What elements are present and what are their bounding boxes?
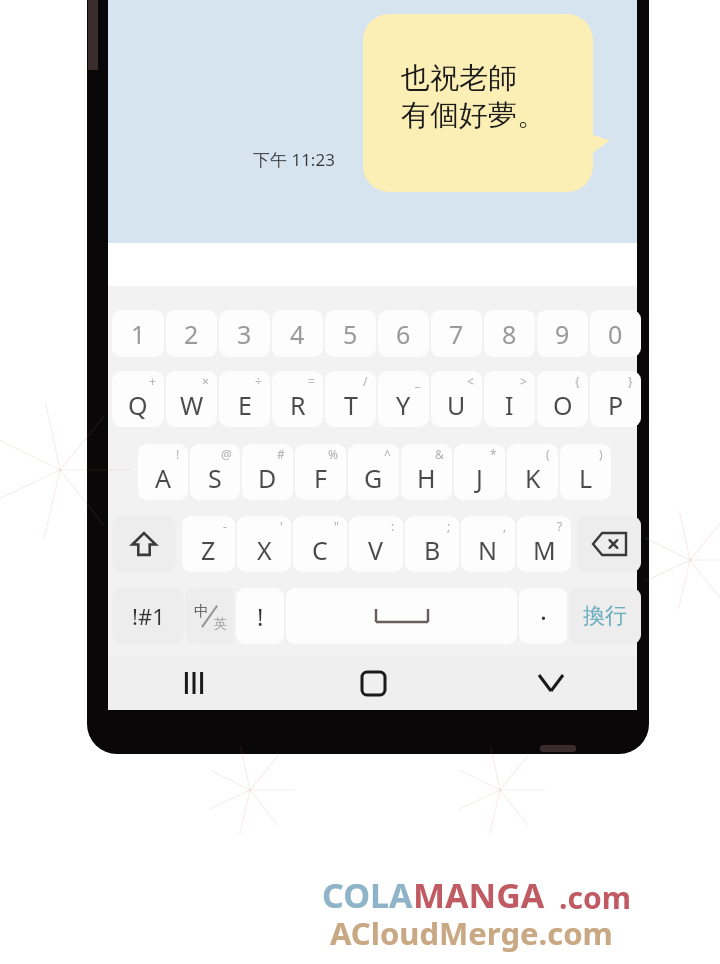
staticText: C [312,533,328,567]
staticText: !#1 [132,601,165,631]
button[interactable]: { [537,371,588,427]
button[interactable]: !#1 [112,588,184,644]
staticText: 9 [555,317,570,351]
staticText: / [363,373,368,389]
button[interactable]: 換行 [569,588,641,644]
button[interactable]: ! [236,588,284,644]
button[interactable]: ( [507,444,558,500]
button[interactable]: Hide keyboard [527,659,575,707]
staticText: 換行 [583,602,627,630]
staticText: ÷ [255,373,262,389]
staticText: 有個好夢。 [401,97,546,134]
button[interactable]: 8 [484,310,535,357]
button[interactable]: × [166,371,217,427]
staticText: * [490,446,497,462]
staticText: G [364,461,383,495]
button[interactable]: ! [138,444,188,500]
staticText: } [628,373,633,389]
button[interactable]: @ [190,444,240,500]
button[interactable]: _ [378,371,429,427]
staticText: 2 [184,317,199,351]
button[interactable]: ) [560,444,611,500]
staticText: X [257,533,272,567]
staticText: Y [396,388,411,422]
staticText: U [447,388,466,422]
staticText: × [202,373,209,389]
button[interactable]: Backspace [577,516,641,572]
staticText: 4 [290,317,305,351]
button[interactable]: } [590,371,641,427]
staticText: ' [280,518,283,534]
staticText: ACloudMerge.com [330,912,613,954]
button[interactable]: 1 [112,310,164,357]
button[interactable]: ; [405,516,459,572]
button[interactable]: < [431,371,482,427]
staticText: < [467,373,474,389]
staticText: - [223,518,227,534]
staticText: # [277,446,285,462]
button[interactable]: 6 [378,310,429,357]
button[interactable]: Home [349,659,397,707]
button[interactable]: & [401,444,452,500]
staticText: D [258,461,277,495]
staticText: L [579,461,593,495]
staticText: S [208,461,222,495]
staticText: K [525,461,541,495]
staticText: ! [257,600,264,633]
button[interactable]: * [454,444,505,500]
staticText: H [417,461,436,495]
staticText: A [155,461,171,495]
button[interactable]: / [325,371,376,427]
staticText: 也祝老師 [401,60,517,97]
staticText: B [424,533,441,567]
staticText: R [290,388,306,422]
button[interactable]: Space [286,588,517,644]
button[interactable]: 5 [325,310,376,357]
staticText: · [540,599,547,634]
button[interactable]: : [349,516,403,572]
staticText: MANGA [413,872,545,918]
staticText: ! [176,446,180,462]
button[interactable]: # [242,444,293,500]
staticText: N [478,533,498,567]
staticText: V [368,533,384,567]
button[interactable]: 9 [537,310,588,357]
staticText: @ [221,446,232,462]
staticText: 中 [194,602,209,621]
button[interactable]: 3 [219,310,270,357]
staticText: ( [546,446,550,462]
button[interactable]: ÷ [219,371,270,427]
button[interactable]: 4 [272,310,323,357]
button[interactable]: > [484,371,535,427]
button[interactable]: ? [517,516,571,572]
button[interactable]: " [293,516,347,572]
staticText: 1 [131,317,146,351]
button[interactable]: - [182,516,235,572]
button[interactable]: Recents [170,659,218,707]
staticText: P [608,388,624,422]
staticText: M [533,533,556,567]
button[interactable]: 0 [590,310,641,357]
button[interactable]: % [295,444,346,500]
button[interactable]: ^ [348,444,399,500]
staticText: O [553,388,573,422]
staticText: ^ [384,446,391,462]
staticText: W [180,388,204,422]
button[interactable]: 7 [431,310,482,357]
staticText: .com [559,877,631,918]
button[interactable]: Shift [112,516,176,572]
staticText: = [308,373,315,389]
button[interactable]: ' [237,516,291,572]
button[interactable]: 2 [166,310,217,357]
staticText: ? [557,518,563,534]
staticText: & [435,446,444,462]
button[interactable]: · [519,588,567,644]
button[interactable]: = [272,371,323,427]
button[interactable]: Chinese English toggle [186,588,234,644]
button[interactable]: + [112,371,164,427]
button[interactable]: , [461,516,515,572]
staticText: _ [415,373,421,389]
staticText: ; [447,518,451,534]
staticText: { [575,373,580,389]
staticText: I [505,388,514,422]
